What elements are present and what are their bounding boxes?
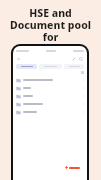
button[interactable]: Edit — [71, 56, 77, 62]
button[interactable]: More options — [13, 108, 87, 116]
button[interactable] — [62, 164, 83, 171]
button[interactable]: More options — [13, 76, 87, 84]
button[interactable]: Search — [78, 56, 84, 62]
staticText: HSE and Document pool for better safety — [2, 6, 99, 56]
button[interactable]: Tab — [39, 64, 62, 69]
button[interactable]: More options — [13, 100, 87, 108]
button[interactable]: Back — [16, 56, 22, 62]
button[interactable]: More options — [13, 92, 87, 100]
button[interactable]: Selected tab — [16, 64, 37, 69]
button[interactable]: More options — [13, 84, 87, 92]
button[interactable]: Tab — [64, 64, 84, 69]
